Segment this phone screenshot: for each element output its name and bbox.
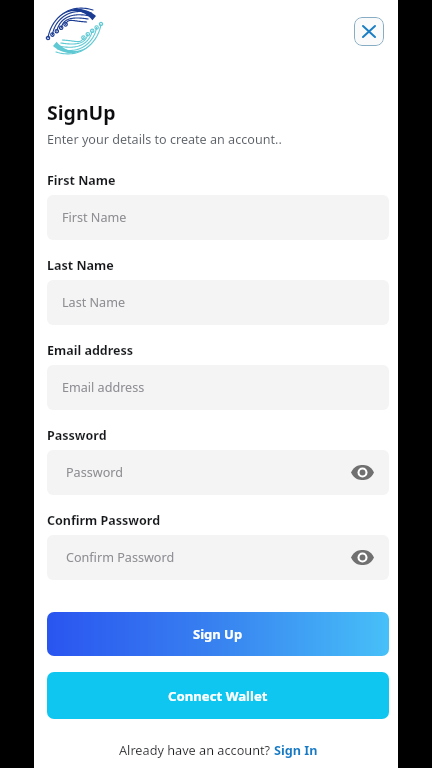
staticText: Confirm Password <box>47 512 161 529</box>
button[interactable]: Confirm Password <box>47 535 389 580</box>
staticText: Confirm Password <box>66 549 175 566</box>
staticText: Last Name <box>47 257 114 274</box>
staticText: Password <box>66 464 123 481</box>
button[interactable]: Connect Wallet <box>47 672 389 719</box>
staticText: Sign Up <box>193 625 243 643</box>
staticText: Last Name <box>62 294 126 311</box>
button[interactable]: First Name <box>47 195 389 240</box>
button[interactable]: Password <box>47 450 389 495</box>
staticText: Already have an account? <box>119 741 274 758</box>
button[interactable]: Toggle password visibility <box>351 465 374 480</box>
staticText: SignUp <box>47 99 116 126</box>
staticText: Email address <box>47 342 134 359</box>
staticText: Connect Wallet <box>168 687 268 705</box>
button[interactable]: Email address <box>47 365 389 410</box>
staticText: First Name <box>62 209 127 226</box>
staticText: Enter your details to create an account.… <box>47 131 282 148</box>
staticText: First Name <box>47 172 116 189</box>
button[interactable]: Last Name <box>47 280 389 325</box>
staticText: Password <box>47 427 107 444</box>
staticText: Email address <box>62 379 145 396</box>
button[interactable]: Sign Up <box>47 612 389 656</box>
button[interactable]: Sign In <box>274 741 318 758</box>
staticText: Sign In <box>274 741 318 758</box>
button[interactable]: Close <box>354 17 384 46</box>
button[interactable]: Toggle password visibility <box>351 550 374 565</box>
